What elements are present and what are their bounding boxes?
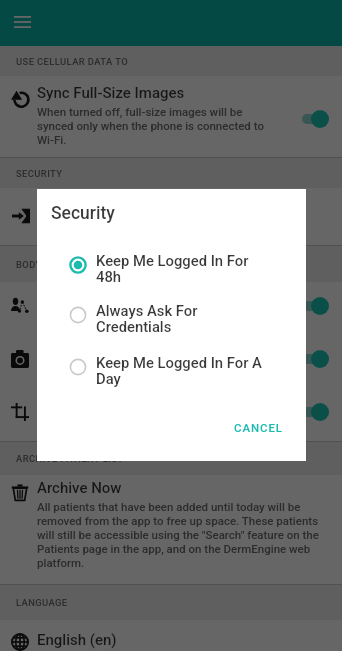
staticText: Always Ask For Credentials: [96, 302, 198, 336]
staticText: Archive Now: [37, 479, 122, 497]
staticText: BODY MAP: [16, 259, 67, 270]
staticText: Body Mapping: [37, 296, 134, 314]
staticText: All patients that have been added until …: [37, 500, 329, 570]
button[interactable]: Camera Overlay: [0, 335, 342, 388]
button[interactable]: Always Ask For Credentials: [37, 300, 306, 350]
staticText: LANGUAGE: [16, 597, 68, 608]
staticText: ARCHIVE PATIENT LIST: [16, 453, 124, 464]
staticText: Keep Me Logged In For 48h: [96, 252, 249, 286]
button[interactable]: Keep Me Logged In For 48h: [37, 250, 306, 300]
staticText: SECURITY: [16, 168, 63, 179]
staticText: English (en): [37, 631, 117, 649]
button[interactable]: Sync Full-Size Images: [0, 76, 342, 157]
staticText: USE CELLULAR DATA TO: [16, 56, 129, 67]
staticText: When turned off, full-size images will b…: [37, 105, 275, 147]
button[interactable]: CANCEL: [218, 409, 299, 446]
staticText: Security: [51, 203, 115, 224]
button[interactable]: English (en): [0, 620, 342, 651]
staticText: Login Method: [37, 196, 130, 214]
button[interactable]: Body Mapping: [0, 282, 342, 335]
button[interactable]: Open navigation menu: [2, 2, 42, 42]
button[interactable]: Keep Me Logged In For A Day: [37, 352, 306, 402]
staticText: CANCEL: [234, 421, 283, 434]
button[interactable]: Auto Crop: [0, 388, 342, 441]
staticText: Keep Me Logged In For A Day: [96, 354, 262, 388]
button[interactable]: Archive Now: [0, 475, 342, 584]
staticText: Sync Full-Size Images: [37, 84, 185, 102]
button[interactable]: Login Method: [0, 188, 342, 245]
staticText: Keep Me Logged In For 48h: [37, 217, 178, 230]
staticText: Camera Overlay: [37, 349, 143, 367]
